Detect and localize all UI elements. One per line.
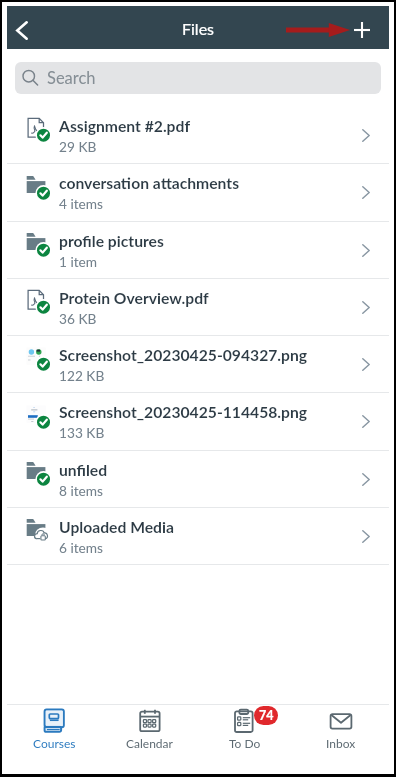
button[interactable]: Courses bbox=[7, 705, 102, 774]
button[interactable]: Protein Overview.pdf bbox=[7, 279, 389, 335]
staticText: 133 KB bbox=[59, 424, 105, 440]
staticText: Inbox bbox=[326, 736, 356, 750]
staticText: Uploaded Media bbox=[59, 518, 174, 537]
staticText: unfiled bbox=[59, 461, 108, 480]
button[interactable]: Assignment #2.pdf bbox=[7, 107, 389, 163]
staticText: 122 KB bbox=[59, 367, 105, 383]
button[interactable]: Screenshot_20230425-114458.png bbox=[7, 393, 389, 450]
button[interactable]: 74 bbox=[197, 705, 293, 774]
staticText: 1 item bbox=[59, 253, 98, 269]
button[interactable]: unfiled bbox=[7, 451, 389, 507]
button[interactable]: Calendar bbox=[102, 705, 197, 774]
button[interactable]: Search bbox=[15, 62, 381, 94]
staticText: conversation attachments bbox=[59, 174, 240, 193]
staticText: 29 KB bbox=[59, 138, 97, 154]
button[interactable]: profile pictures bbox=[7, 222, 389, 278]
staticText: Protein Overview.pdf bbox=[59, 289, 209, 308]
staticText: 6 items bbox=[59, 539, 104, 555]
button[interactable]: Screenshot_20230425-094327.png bbox=[7, 336, 389, 392]
staticText: profile pictures bbox=[59, 232, 164, 251]
button[interactable]: Inbox bbox=[293, 705, 389, 774]
staticText: 8 items bbox=[59, 482, 104, 498]
staticText: 36 KB bbox=[59, 310, 97, 326]
staticText: Files bbox=[182, 19, 215, 38]
staticText: 4 items bbox=[59, 195, 104, 211]
staticText: Courses bbox=[33, 736, 76, 750]
staticText: Search bbox=[47, 68, 96, 88]
staticText: Screenshot_20230425-114458.png bbox=[59, 403, 308, 422]
button[interactable]: Add bbox=[347, 6, 389, 49]
staticText: To Do bbox=[229, 736, 261, 750]
button[interactable]: Uploaded Media bbox=[7, 508, 389, 564]
staticText: 74 bbox=[259, 708, 274, 723]
staticText: Calendar bbox=[126, 736, 173, 750]
button[interactable]: Back bbox=[7, 6, 43, 49]
button[interactable]: conversation attachments bbox=[7, 164, 389, 221]
staticText: Screenshot_20230425-094327.png bbox=[59, 346, 308, 365]
staticText: Assignment #2.pdf bbox=[59, 117, 191, 136]
